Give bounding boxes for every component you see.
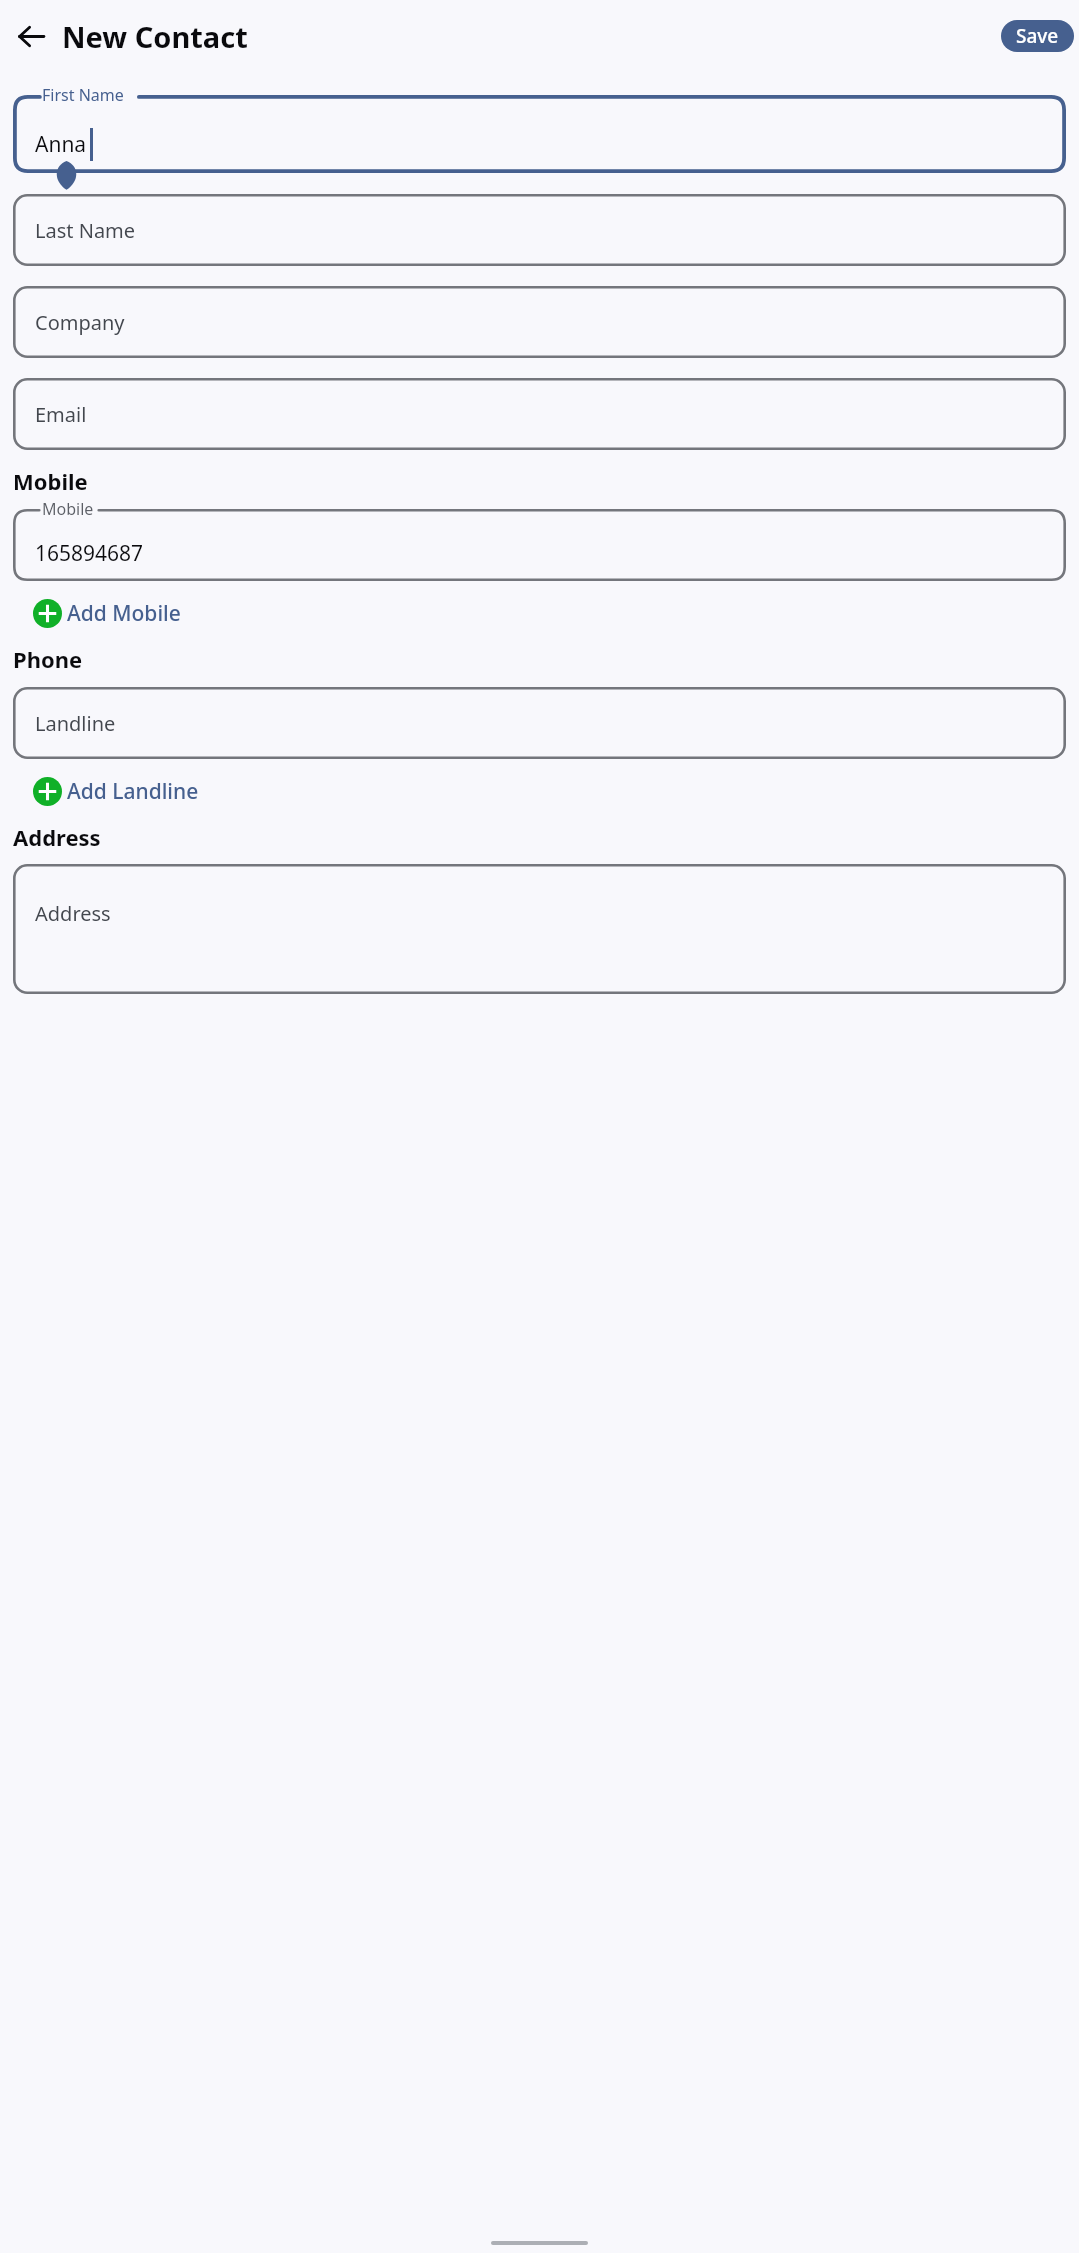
staticText: New Contact	[62, 17, 248, 56]
staticText: Company	[35, 309, 125, 336]
staticText: Last Name	[35, 217, 136, 244]
button[interactable]: Add Mobile	[33, 595, 181, 632]
staticText: Address	[13, 822, 101, 852]
button[interactable]: First Name	[13, 95, 1066, 173]
staticText: Address	[35, 900, 111, 927]
button[interactable]: Add Landline	[33, 773, 199, 810]
staticText: Email	[35, 401, 87, 428]
button[interactable]: Email	[13, 378, 1066, 450]
staticText: Anna	[35, 130, 87, 159]
button[interactable]: Address	[13, 864, 1066, 994]
staticText: Landline	[35, 710, 116, 737]
staticText: Phone	[13, 644, 83, 674]
staticText: Add Mobile	[67, 599, 181, 628]
staticText: 165894687	[35, 539, 144, 568]
button[interactable]: Save	[1001, 20, 1074, 52]
button[interactable]: Mobile	[13, 509, 1066, 581]
button[interactable]: Last Name	[13, 194, 1066, 266]
button[interactable]: Landline	[13, 687, 1066, 759]
staticText: Save	[1016, 23, 1059, 49]
staticText: Mobile	[42, 498, 94, 520]
staticText: First Name	[42, 84, 124, 106]
staticText: Mobile	[13, 466, 88, 496]
staticText: Add Landline	[67, 777, 199, 806]
button[interactable]: Company	[13, 286, 1066, 358]
button[interactable]: Back	[7, 12, 55, 60]
